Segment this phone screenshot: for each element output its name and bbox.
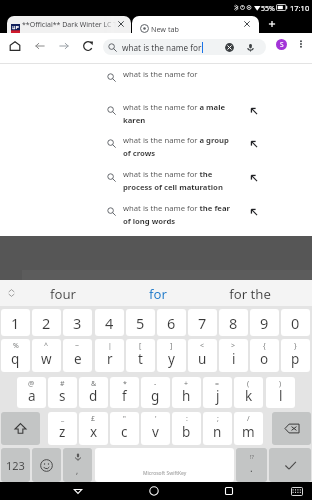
button[interactable]: 4 bbox=[95, 309, 124, 336]
button[interactable]: v bbox=[141, 412, 170, 445]
button[interactable]: what is the name for a group of crows bbox=[0, 130, 312, 163]
button[interactable]: Home bbox=[149, 486, 159, 496]
button[interactable]: Forward bbox=[58, 40, 70, 52]
button[interactable]: q bbox=[1, 339, 30, 372]
staticText: / bbox=[247, 414, 250, 424]
button[interactable]: r bbox=[95, 339, 124, 372]
button[interactable]: Enter bbox=[269, 448, 311, 482]
button[interactable]: k bbox=[234, 377, 263, 408]
staticText: o bbox=[260, 350, 269, 368]
button[interactable]: what is the name for bbox=[0, 64, 312, 97]
button[interactable]: 9 bbox=[250, 309, 279, 336]
staticText: [ bbox=[139, 341, 142, 351]
staticText: ~ bbox=[75, 341, 80, 351]
button[interactable]: Recents bbox=[224, 486, 234, 496]
button[interactable]: what is the name for bbox=[103, 39, 266, 55]
button[interactable]: l bbox=[266, 377, 295, 408]
staticText: z bbox=[59, 423, 66, 441]
button[interactable]: More options bbox=[295, 38, 307, 50]
button[interactable]: 1 bbox=[1, 309, 30, 336]
button[interactable]: Period bbox=[236, 448, 267, 482]
button[interactable]: Use suggestion bbox=[250, 208, 258, 216]
button[interactable]: x bbox=[79, 412, 108, 445]
button[interactable]: h bbox=[172, 377, 201, 408]
staticText: w bbox=[41, 350, 52, 368]
staticText: { bbox=[263, 341, 266, 351]
button[interactable]: c bbox=[110, 412, 139, 445]
button[interactable]: Close tab bbox=[116, 19, 126, 29]
button[interactable]: what is the name for a male karen bbox=[0, 97, 312, 130]
button[interactable]: n bbox=[203, 412, 232, 445]
staticText: c bbox=[121, 423, 128, 441]
staticText: u bbox=[198, 350, 207, 368]
staticText: q bbox=[11, 350, 20, 368]
button[interactable]: Use suggestion bbox=[250, 174, 258, 182]
button[interactable]: Symbols bbox=[1, 448, 30, 482]
button[interactable]: f bbox=[110, 377, 139, 408]
button[interactable]: t bbox=[126, 339, 155, 372]
button[interactable]: Hide keyboard bbox=[291, 487, 303, 496]
staticText: 2 bbox=[42, 313, 51, 333]
button[interactable]: what is the name for the process of cell… bbox=[0, 164, 312, 197]
staticText: 4 bbox=[105, 313, 114, 333]
staticText: , bbox=[76, 465, 79, 476]
button[interactable]: Close tab bbox=[242, 19, 252, 29]
staticText: !? bbox=[250, 453, 254, 460]
button[interactable]: o bbox=[250, 339, 279, 372]
staticText: " bbox=[123, 414, 126, 424]
staticText: j bbox=[216, 387, 220, 405]
button[interactable]: e bbox=[63, 339, 92, 372]
button[interactable]: j bbox=[203, 377, 232, 408]
staticText: b bbox=[182, 423, 191, 441]
button[interactable]: d bbox=[79, 377, 108, 408]
button[interactable]: Clear bbox=[224, 42, 235, 53]
staticText: } bbox=[294, 341, 297, 351]
button[interactable]: z bbox=[48, 412, 77, 445]
staticText: 7 bbox=[198, 313, 207, 333]
button[interactable]: 7 bbox=[188, 309, 217, 336]
button[interactable]: what is the name for the fear of long wo… bbox=[0, 198, 312, 231]
button[interactable]: u bbox=[188, 339, 217, 372]
staticText: what is the name for a male karen bbox=[123, 102, 232, 126]
button[interactable]: b bbox=[172, 412, 201, 445]
button[interactable]: New tab bbox=[132, 16, 259, 33]
button[interactable]: Reload bbox=[82, 40, 94, 52]
button[interactable]: Back bbox=[73, 486, 83, 496]
button[interactable]: Profile bbox=[276, 39, 287, 50]
button[interactable]: Voice search bbox=[245, 42, 256, 53]
button[interactable]: a bbox=[17, 377, 46, 408]
button[interactable]: Emoji bbox=[32, 448, 61, 482]
button[interactable]: Back bbox=[34, 40, 46, 52]
button[interactable]: w bbox=[32, 339, 61, 372]
button[interactable]: 8 bbox=[219, 309, 248, 336]
button[interactable]: 0 bbox=[281, 309, 310, 336]
button[interactable]: 3 bbox=[63, 309, 92, 336]
staticText: k bbox=[245, 387, 253, 405]
button[interactable]: Shift bbox=[1, 412, 40, 445]
button[interactable]: Use suggestion bbox=[250, 107, 258, 115]
button[interactable]: Space bbox=[95, 448, 234, 482]
staticText: ^ bbox=[44, 341, 49, 351]
staticText: 123 bbox=[6, 458, 25, 473]
button[interactable]: New tab bbox=[266, 18, 278, 30]
button[interactable]: **Official** Dark Winter LC T bbox=[7, 16, 131, 33]
button[interactable]: y bbox=[157, 339, 186, 372]
button[interactable]: 5 bbox=[126, 309, 155, 336]
button[interactable]: Home bbox=[9, 40, 21, 52]
staticText: £ bbox=[91, 414, 96, 424]
staticText: g bbox=[151, 387, 160, 405]
button[interactable]: Use suggestion bbox=[250, 140, 258, 148]
button[interactable]: 6 bbox=[157, 309, 186, 336]
button[interactable]: g bbox=[141, 377, 170, 408]
button[interactable]: Voice input bbox=[63, 448, 92, 482]
button[interactable]: i bbox=[219, 339, 248, 372]
button[interactable]: p bbox=[281, 339, 310, 372]
staticText: four bbox=[26, 285, 100, 303]
button[interactable]: s bbox=[48, 377, 77, 408]
staticText: < bbox=[200, 341, 205, 351]
button[interactable]: 2 bbox=[32, 309, 61, 336]
button[interactable]: m bbox=[234, 412, 263, 445]
staticText: ] bbox=[170, 341, 173, 351]
button[interactable]: Backspace bbox=[272, 412, 311, 445]
staticText: m bbox=[242, 423, 255, 441]
